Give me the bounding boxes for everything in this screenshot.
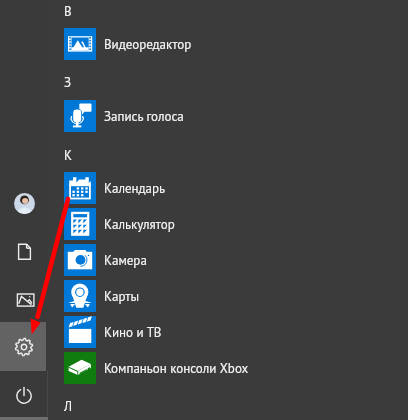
button[interactable]: Карты (56, 280, 408, 312)
button[interactable]: Календарь (56, 172, 408, 204)
button[interactable]: Account (14, 193, 35, 214)
button[interactable]: Power (0, 371, 46, 420)
staticText: Карты (104, 288, 139, 305)
button[interactable]: Калькулятор (56, 208, 408, 240)
staticText: Календарь (104, 180, 166, 197)
button[interactable]: Видеоредактор (56, 28, 408, 60)
staticText: Видеоредактор (104, 36, 192, 53)
button[interactable]: Pictures (0, 275, 46, 324)
button[interactable]: Documents (0, 227, 46, 276)
staticText: Калькулятор (104, 216, 175, 233)
staticText: Компаньон консоли Xbox (104, 360, 249, 377)
button[interactable]: Settings (0, 322, 46, 371)
staticText: Л (64, 398, 73, 415)
staticText: Камера (104, 252, 147, 269)
staticText: К (64, 147, 72, 164)
staticText: Запись голоса (104, 108, 184, 125)
button[interactable]: Компаньон консоли Xbox (56, 352, 408, 384)
staticText: З (64, 74, 72, 91)
button[interactable]: Запись голоса (56, 100, 408, 132)
button[interactable]: Камера (56, 244, 408, 276)
staticText: В (64, 3, 72, 20)
staticText: Кино и ТВ (104, 324, 162, 341)
button[interactable]: Кино и ТВ (56, 316, 408, 348)
